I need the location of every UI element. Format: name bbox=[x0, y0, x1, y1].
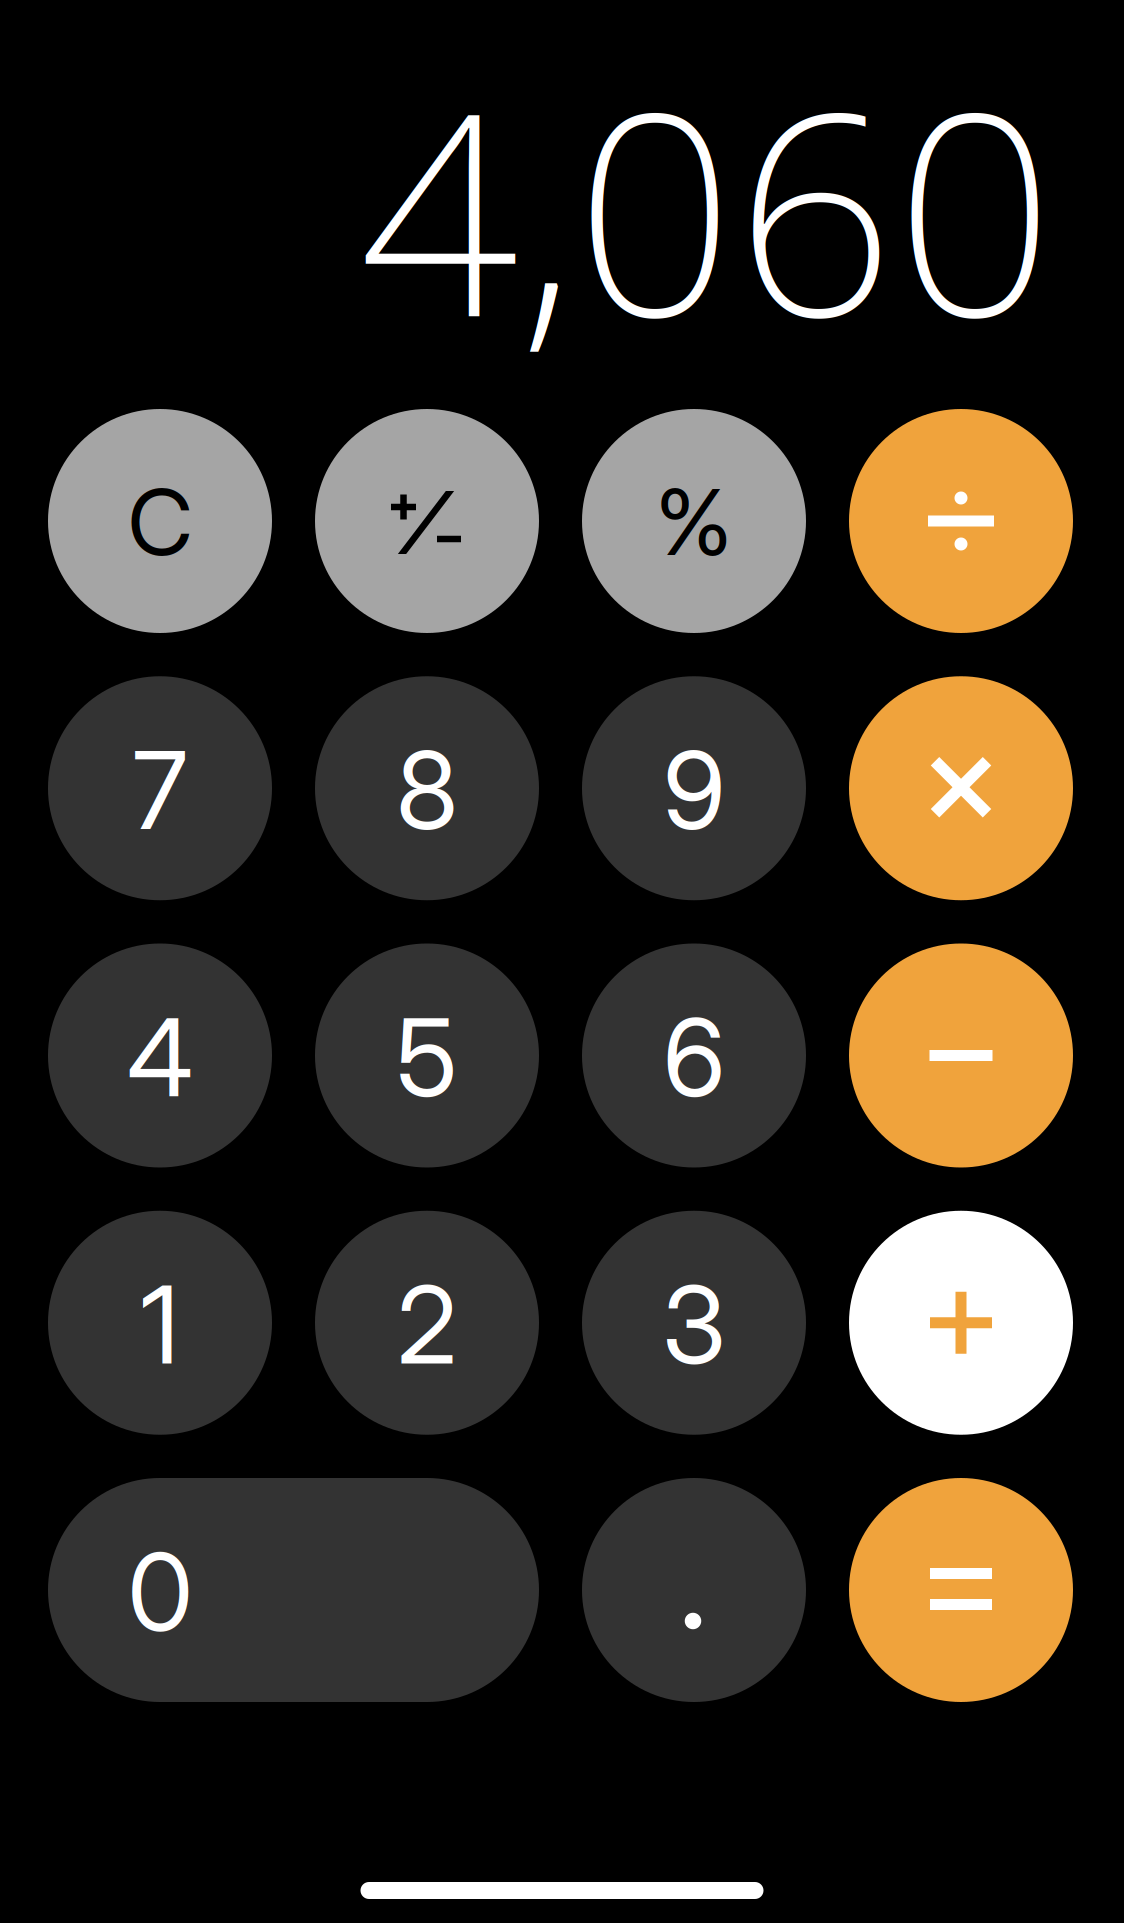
button[interactable]: Subtract bbox=[849, 943, 1073, 1167]
staticText: 4 bbox=[127, 993, 193, 1122]
staticText: 9 bbox=[663, 726, 725, 855]
button[interactable]: 7 bbox=[48, 676, 272, 900]
staticText: % bbox=[655, 467, 732, 577]
button[interactable]: Decimal point bbox=[582, 1478, 806, 1702]
button[interactable]: 6 bbox=[582, 943, 806, 1167]
staticText: 4,060 bbox=[359, 21, 1055, 393]
button[interactable]: Clear bbox=[48, 409, 272, 633]
button[interactable]: 0 bbox=[48, 1478, 539, 1702]
staticText: 7 bbox=[132, 726, 187, 855]
staticText: C bbox=[127, 467, 192, 577]
button[interactable]: 2 bbox=[315, 1211, 539, 1435]
staticText: 5 bbox=[396, 993, 458, 1122]
staticText: 3 bbox=[662, 1260, 726, 1389]
button[interactable]: Equals bbox=[849, 1478, 1073, 1702]
button[interactable]: Divide bbox=[849, 409, 1073, 633]
button[interactable]: 3 bbox=[582, 1211, 806, 1435]
button[interactable]: 5 bbox=[315, 943, 539, 1167]
button[interactable]: 8 bbox=[315, 676, 539, 900]
staticText: 1 bbox=[140, 1260, 179, 1389]
button[interactable]: 1 bbox=[48, 1211, 272, 1435]
button[interactable]: 9 bbox=[582, 676, 806, 900]
button[interactable]: Percent bbox=[582, 409, 806, 633]
staticText: 8 bbox=[396, 726, 458, 855]
button[interactable]: Add bbox=[849, 1211, 1073, 1435]
button[interactable]: 4 bbox=[48, 943, 272, 1167]
staticText: 2 bbox=[397, 1260, 457, 1389]
staticText: 0 bbox=[127, 1527, 192, 1657]
button[interactable]: Multiply bbox=[849, 676, 1073, 900]
staticText: 6 bbox=[663, 993, 725, 1122]
button[interactable]: Plus minus bbox=[315, 409, 539, 633]
